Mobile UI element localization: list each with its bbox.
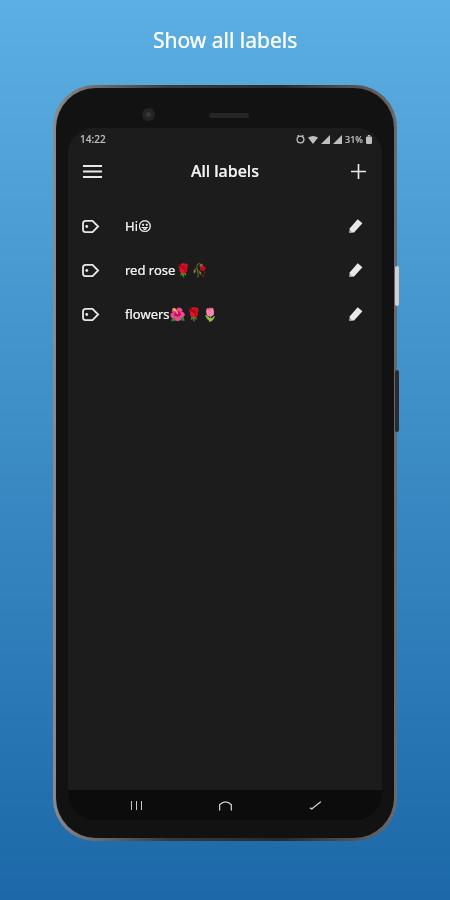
button[interactable]: red rose🌹🥀: [68, 248, 382, 292]
button[interactable]: Open navigation menu: [74, 153, 110, 189]
staticText: 14:22: [80, 132, 106, 146]
button[interactable]: Edit label: [336, 206, 376, 246]
button[interactable]: Add label: [340, 153, 376, 189]
staticText: red rose🌹🥀: [125, 261, 336, 279]
button[interactable]: Edit label: [336, 250, 376, 290]
button[interactable]: Home: [203, 792, 247, 818]
button[interactable]: Recent apps: [114, 792, 158, 818]
staticText: Show all labels: [153, 26, 298, 55]
staticText: All labels: [191, 160, 259, 182]
staticText: 31%: [345, 133, 363, 145]
button[interactable]: flowers🌺🌹🌷: [68, 292, 382, 336]
staticText: Hi😛: [125, 217, 336, 235]
button[interactable]: Back: [293, 792, 337, 818]
button[interactable]: Hi😛: [68, 204, 382, 248]
button[interactable]: Edit label: [336, 294, 376, 334]
staticText: flowers🌺🌹🌷: [125, 305, 336, 323]
